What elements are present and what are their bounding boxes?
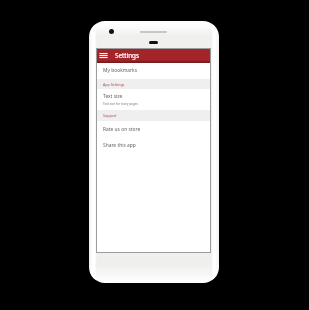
staticText: Share this app (103, 142, 136, 149)
staticText: App Settings (103, 82, 125, 87)
staticText: Rate us on store (103, 126, 141, 133)
button[interactable]: My bookmarks (97, 63, 210, 79)
staticText: My bookmarks (103, 67, 138, 74)
staticText: Settings (115, 51, 139, 60)
button[interactable]: Open navigation menu (99, 53, 108, 62)
button[interactable]: Text size (97, 89, 210, 110)
staticText: Text size (103, 93, 123, 100)
button[interactable]: Share this app (97, 136, 210, 151)
button[interactable]: Rate us on store (97, 121, 210, 136)
staticText: Text size for story pages (103, 102, 138, 106)
staticText: Support (103, 113, 117, 118)
